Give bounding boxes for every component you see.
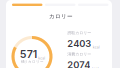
staticText: カロリー [49,13,73,20]
staticText: 消費カロリー [67,52,91,57]
staticText: 2074 [67,59,90,68]
staticText: kcal [93,45,100,49]
staticText: 摂取カロリー [67,30,91,35]
staticText: 残りカロリー [21,59,43,64]
staticText: 571 [20,47,38,60]
staticText: kcal [38,56,45,60]
staticText: kcal [92,66,99,68]
staticText: 2403 [67,38,91,49]
